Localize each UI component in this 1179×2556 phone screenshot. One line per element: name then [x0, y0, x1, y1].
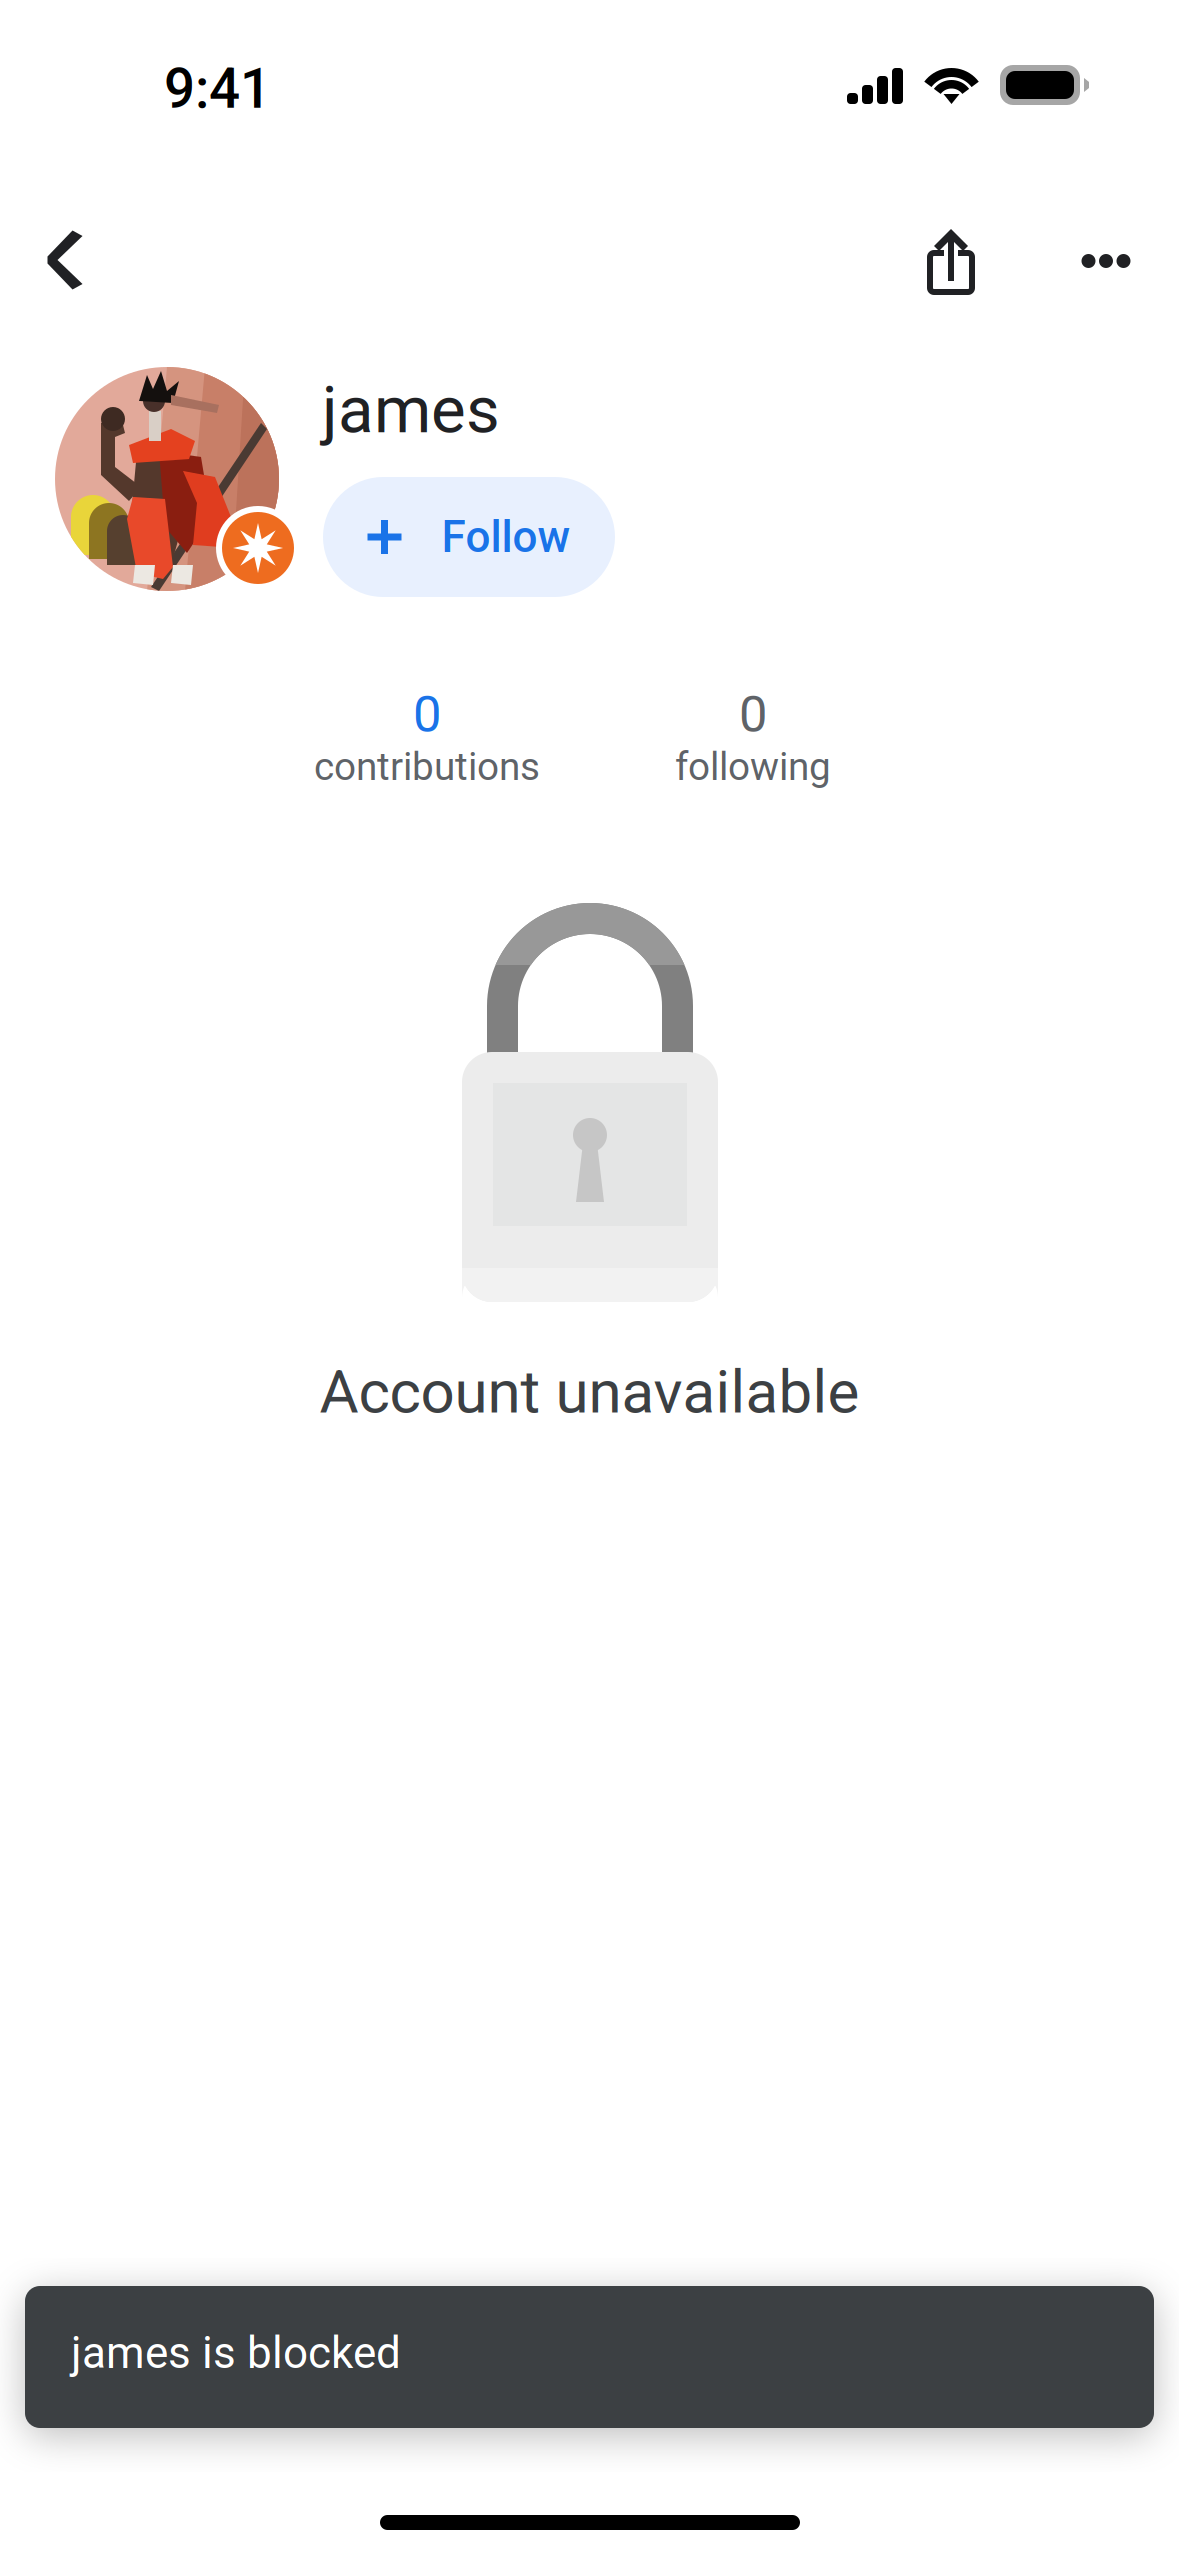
staticText: 0: [739, 685, 767, 744]
staticText: Follow: [441, 511, 570, 563]
button[interactable]: More options: [1046, 201, 1166, 321]
staticText: james: [322, 372, 500, 448]
staticText: 9:41: [164, 57, 271, 121]
button[interactable]: Follow: [323, 477, 615, 597]
button[interactable]: 0: [588, 689, 918, 785]
staticText: following: [675, 744, 831, 789]
staticText: Account unavailable: [319, 1357, 859, 1427]
button[interactable]: 0: [262, 689, 592, 785]
staticText: james is blocked: [71, 2327, 401, 2379]
staticText: contributions: [314, 744, 540, 789]
button[interactable]: Back: [10, 200, 120, 320]
button[interactable]: Share: [891, 202, 1011, 322]
staticText: 0: [413, 685, 441, 744]
